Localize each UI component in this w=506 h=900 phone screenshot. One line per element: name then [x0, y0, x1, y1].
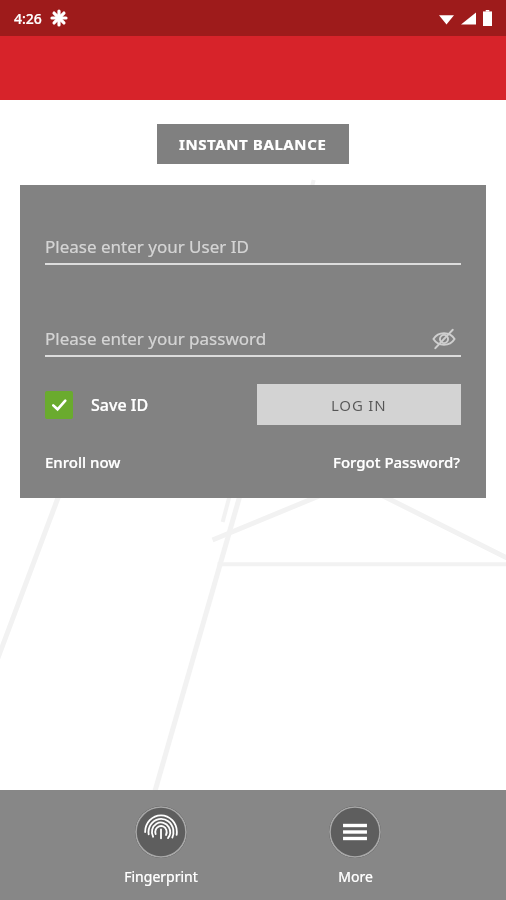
staticText: LOG IN: [331, 395, 387, 415]
staticText: Fingerprint: [124, 867, 198, 886]
button[interactable]: LOG IN: [257, 384, 461, 425]
staticText: Please enter your password: [45, 327, 267, 350]
button[interactable]: Enroll now: [45, 452, 121, 472]
staticText: INSTANT BALANCE: [179, 134, 327, 154]
button[interactable]: Forgot Password?: [333, 452, 461, 472]
staticText: Forgot Password?: [333, 452, 461, 472]
staticText: 4:26: [14, 9, 42, 28]
staticText: Please enter your User ID: [45, 235, 249, 258]
button[interactable]: Please enter your password: [45, 322, 427, 355]
button[interactable]: INSTANT BALANCE: [157, 124, 349, 164]
button[interactable]: Fingerprint login: [124, 790, 198, 886]
staticText: Save ID: [91, 394, 149, 416]
button[interactable]: Save ID: [45, 391, 157, 419]
staticText: More: [338, 867, 373, 886]
button[interactable]: Please enter your User ID: [45, 230, 461, 263]
staticText: Enroll now: [45, 452, 121, 472]
button[interactable]: Show password: [427, 322, 461, 355]
button[interactable]: More: [329, 790, 381, 886]
